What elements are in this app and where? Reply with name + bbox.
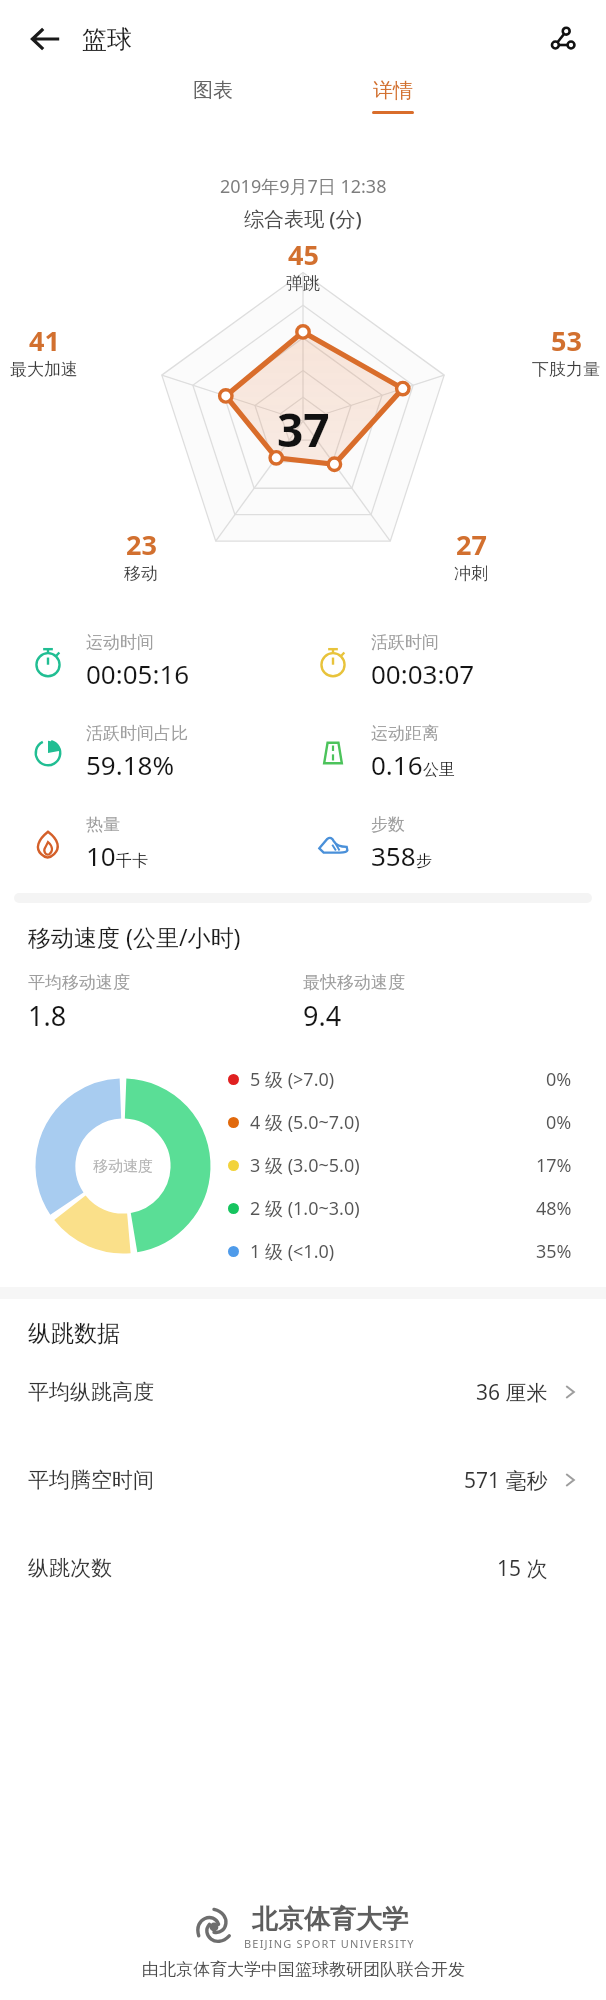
- button[interactable]: 活跃时间占比: [28, 723, 303, 782]
- staticText: 纵跳次数: [28, 1555, 112, 1581]
- button[interactable]: Share: [538, 15, 586, 63]
- staticText: 最大加速: [10, 359, 78, 380]
- staticText: 平均纵跳高度: [28, 1379, 154, 1405]
- staticText: 23: [126, 526, 157, 563]
- staticText: 9.4: [303, 997, 342, 1034]
- staticText: 3 级 (3.0~5.0): [250, 1153, 360, 1178]
- staticText: 移动: [124, 563, 158, 584]
- button[interactable]: 运动距离: [313, 723, 606, 782]
- staticText: 59.18%: [86, 747, 175, 782]
- staticText: 00:05:16: [86, 656, 190, 691]
- button[interactable]: Back: [22, 16, 68, 62]
- staticText: 0%: [546, 1067, 572, 1092]
- staticText: 详情: [373, 78, 413, 103]
- staticText: 35%: [536, 1239, 572, 1264]
- button[interactable]: 平均纵跳高度: [28, 1374, 578, 1410]
- staticText: 下肢力量: [532, 359, 600, 380]
- staticText: 2 级 (1.0~3.0): [250, 1196, 360, 1221]
- staticText: 2019年9月7日 12:38: [220, 174, 387, 199]
- staticText: 0.16: [371, 747, 423, 782]
- button[interactable]: 热量: [28, 814, 303, 873]
- staticText: 358: [371, 838, 416, 873]
- staticText: 千卡: [116, 851, 148, 871]
- staticText: 1.8: [28, 997, 67, 1034]
- button[interactable]: 详情: [333, 78, 453, 140]
- button[interactable]: 图表: [153, 78, 273, 140]
- staticText: 北京体育大学: [252, 1903, 408, 1936]
- staticText: 图表: [193, 78, 233, 103]
- button[interactable]: 运动时间: [28, 632, 303, 691]
- staticText: 热量: [86, 814, 120, 835]
- staticText: 17%: [536, 1153, 572, 1178]
- staticText: 由北京体育大学中国篮球教研团队联合开发: [142, 1959, 465, 1980]
- staticText: 36 厘米: [476, 1378, 548, 1407]
- button[interactable]: 步数: [313, 814, 606, 873]
- staticText: 活跃时间占比: [86, 723, 188, 744]
- staticText: 弹跳: [286, 273, 320, 294]
- staticText: 冲刺: [454, 563, 488, 584]
- staticText: BEIJING SPORT UNIVERSITY: [244, 1936, 415, 1951]
- staticText: 0%: [546, 1110, 572, 1135]
- button[interactable]: 活跃时间: [313, 632, 606, 691]
- staticText: 4 级 (5.0~7.0): [250, 1110, 360, 1135]
- staticText: 41: [29, 322, 60, 359]
- staticText: 53: [551, 322, 582, 359]
- staticText: 运动时间: [86, 632, 154, 653]
- staticText: 篮球: [82, 24, 132, 55]
- staticText: 平均移动速度: [28, 972, 130, 993]
- staticText: 公里: [423, 760, 455, 780]
- staticText: 移动速度 (公里/小时): [28, 921, 241, 952]
- staticText: 00:03:07: [371, 656, 475, 691]
- staticText: 15 次: [497, 1554, 548, 1583]
- staticText: 5 级 (>7.0): [250, 1067, 335, 1092]
- staticText: 活跃时间: [371, 632, 439, 653]
- staticText: 571 毫秒: [464, 1466, 548, 1495]
- staticText: 1 级 (<1.0): [250, 1239, 335, 1264]
- staticText: 运动距离: [371, 723, 439, 744]
- staticText: 45: [288, 236, 319, 273]
- staticText: 最快移动速度: [303, 972, 405, 993]
- staticText: 37: [277, 398, 330, 461]
- staticText: 步数: [371, 814, 405, 835]
- staticText: 27: [456, 526, 487, 563]
- staticText: 10: [86, 838, 116, 873]
- staticText: 移动速度: [93, 1157, 153, 1176]
- staticText: 综合表现 (分): [244, 205, 362, 232]
- staticText: 纵跳数据: [28, 1319, 120, 1348]
- staticText: 平均腾空时间: [28, 1467, 154, 1493]
- staticText: 48%: [536, 1196, 572, 1221]
- staticText: 步: [416, 851, 432, 871]
- button[interactable]: 平均腾空时间: [28, 1462, 578, 1498]
- button[interactable]: 纵跳次数: [28, 1550, 578, 1586]
